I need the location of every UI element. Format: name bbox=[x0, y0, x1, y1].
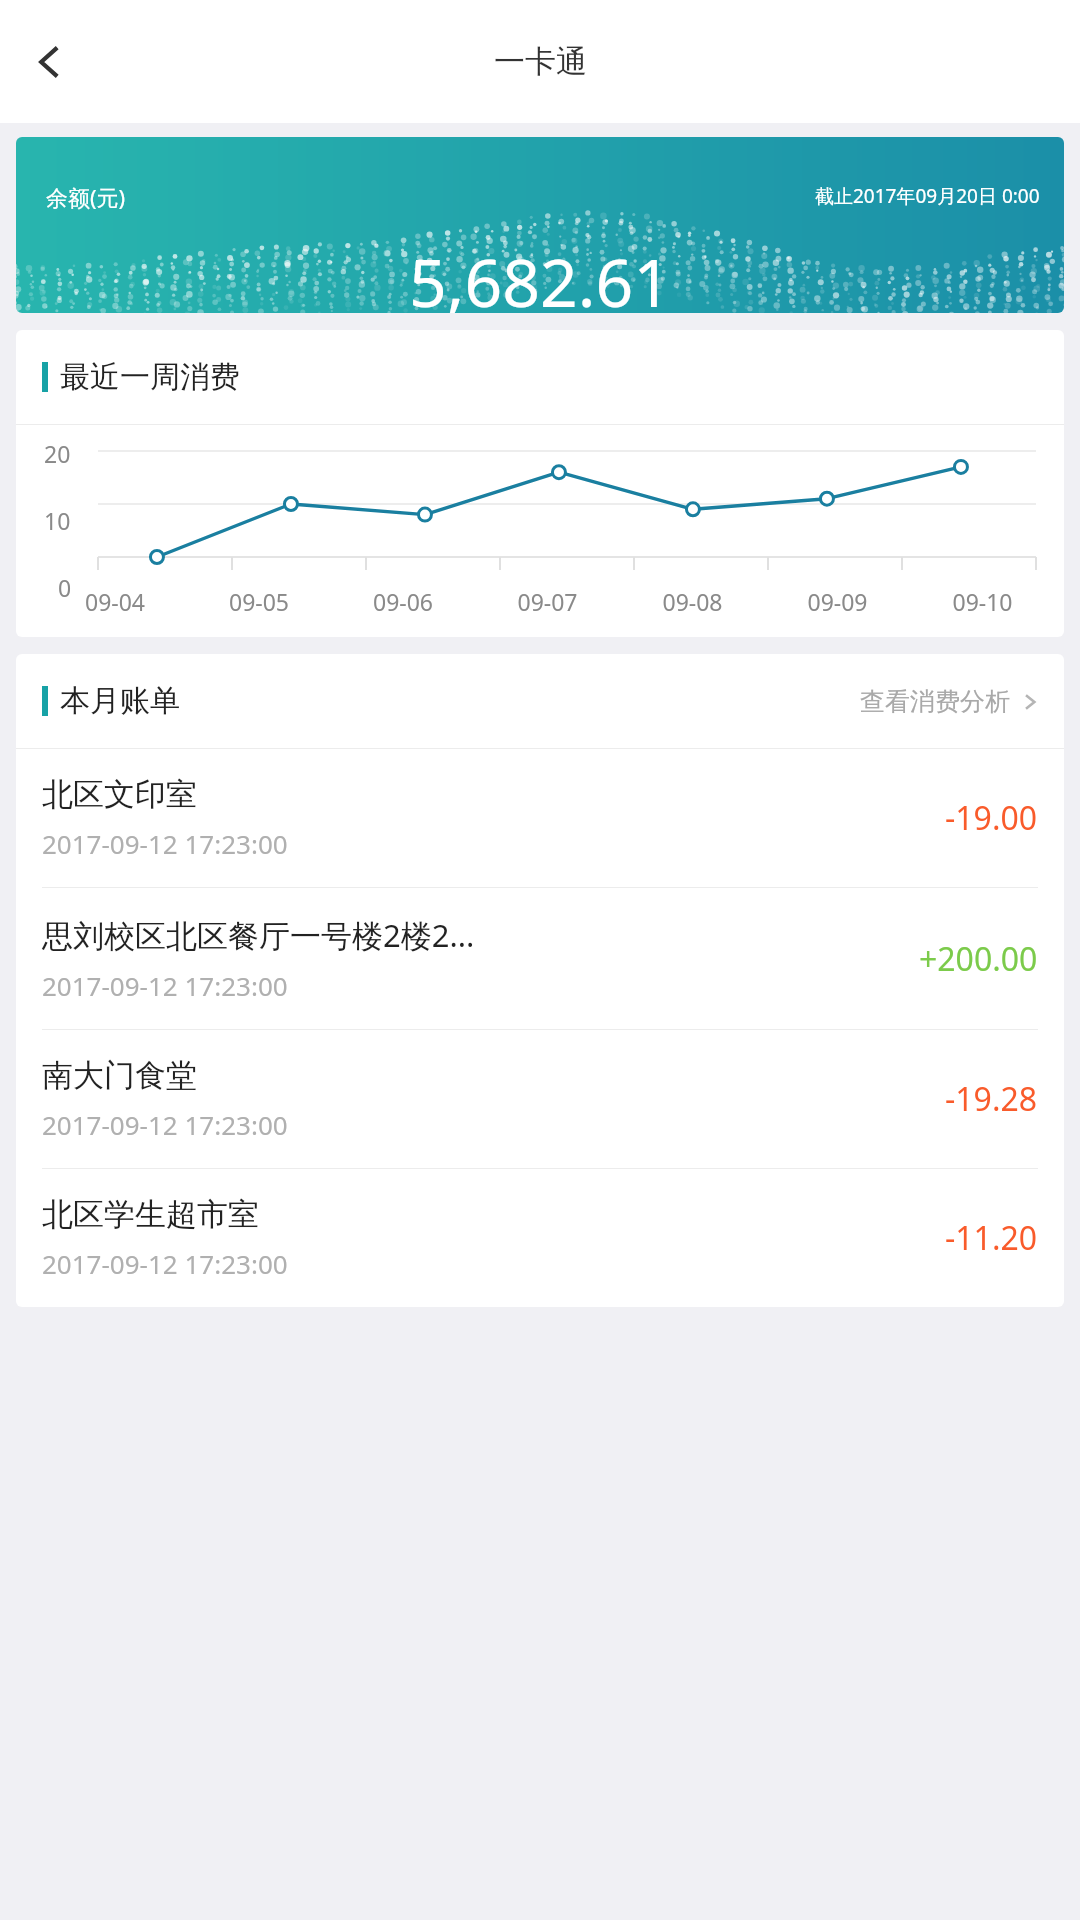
staticText: 09-10 bbox=[910, 586, 1055, 617]
staticText: -11.20 bbox=[945, 1216, 1038, 1260]
staticText: 09-05 bbox=[187, 586, 331, 617]
staticText: 0 bbox=[58, 572, 72, 603]
staticText: 2017-09-12 17:23:00 bbox=[42, 1246, 288, 1281]
staticText: 09-04 bbox=[43, 586, 187, 617]
staticText: 09-08 bbox=[620, 586, 765, 617]
staticText: -19.28 bbox=[945, 1077, 1038, 1121]
staticText: +200.00 bbox=[919, 937, 1038, 981]
staticText: 09-09 bbox=[765, 586, 910, 617]
staticText: 查看消费分析 bbox=[860, 686, 1010, 717]
staticText: 2017-09-12 17:23:00 bbox=[42, 1107, 288, 1142]
staticText: 10 bbox=[44, 505, 71, 536]
staticText: 北区文印室 bbox=[42, 775, 197, 814]
staticText: 余额(元) bbox=[46, 182, 126, 212]
staticText: 本月账单 bbox=[60, 682, 180, 720]
button[interactable]: 余额(元) bbox=[16, 137, 1064, 313]
staticText: 思刘校区北区餐厅一号楼2楼2... bbox=[42, 914, 475, 956]
button[interactable]: 北区文印室 bbox=[16, 749, 1064, 887]
button[interactable]: 北区学生超市室 bbox=[16, 1169, 1064, 1307]
staticText: 2017-09-12 17:23:00 bbox=[42, 968, 288, 1003]
button[interactable]: 思刘校区北区餐厅一号楼2楼2... bbox=[16, 888, 1064, 1029]
staticText: -19.00 bbox=[945, 796, 1038, 840]
staticText: 20 bbox=[44, 438, 71, 469]
staticText: 一卡通 bbox=[494, 42, 587, 81]
staticText: 最近一周消费 bbox=[60, 358, 240, 396]
staticText: 09-06 bbox=[331, 586, 475, 617]
staticText: 5,682.61 bbox=[409, 236, 671, 313]
button[interactable]: Back bbox=[14, 26, 86, 98]
staticText: 截止2017年09月20日 0:00 bbox=[815, 183, 1040, 209]
staticText: 2017-09-12 17:23:00 bbox=[42, 826, 288, 861]
button[interactable]: 查看消费分析 bbox=[854, 678, 1046, 725]
button[interactable]: 南大门食堂 bbox=[16, 1030, 1064, 1168]
staticText: 南大门食堂 bbox=[42, 1056, 197, 1095]
staticText: 北区学生超市室 bbox=[42, 1195, 259, 1234]
staticText: 09-07 bbox=[475, 586, 620, 617]
